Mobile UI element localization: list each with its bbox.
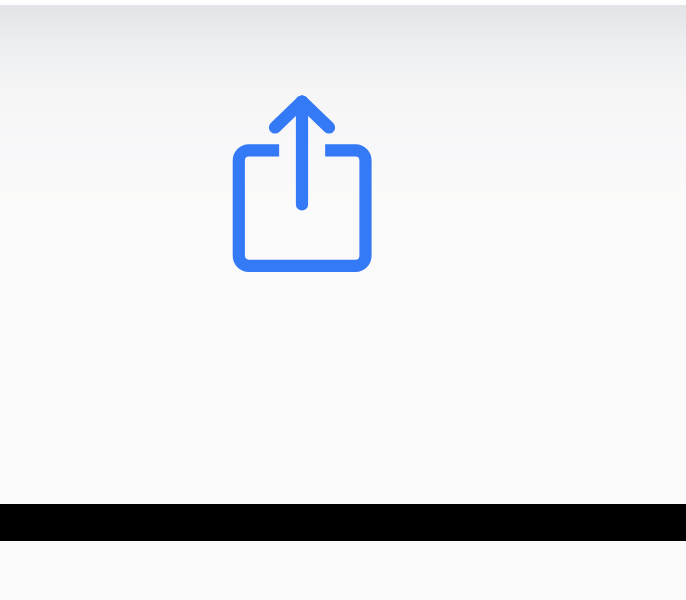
button[interactable]: Share (220, 80, 390, 290)
